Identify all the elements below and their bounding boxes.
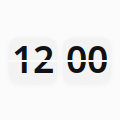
button[interactable]: Hours: [8, 37, 57, 84]
staticText: 12: [12, 34, 54, 83]
button[interactable]: Minutes: [62, 37, 111, 84]
staticText: 00: [66, 34, 108, 83]
